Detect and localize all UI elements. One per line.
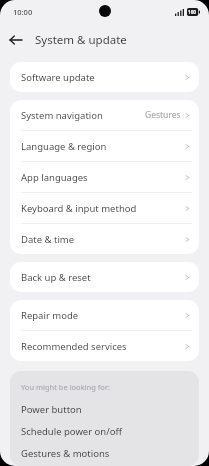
button[interactable]: System navigation (10, 100, 199, 130)
staticText: Software update (21, 71, 95, 84)
staticText: Language & region (21, 140, 107, 153)
staticText: Keyboard & input method (21, 202, 137, 215)
staticText: Power button (21, 403, 82, 416)
staticText: You might be looking for: (21, 382, 111, 392)
staticText: Gestures & motions (21, 447, 110, 460)
button[interactable]: Power button (10, 398, 199, 420)
button[interactable]: Keyboard & input method (10, 193, 199, 223)
staticText: Repair mode (21, 309, 79, 322)
button[interactable]: Language & region (10, 131, 199, 161)
button[interactable]: Recommended services (10, 331, 199, 361)
staticText: System navigation (21, 109, 103, 122)
button[interactable]: Schedule power on/off (10, 420, 199, 442)
button[interactable]: Gestures & motions (10, 442, 199, 464)
button[interactable]: Back (0, 24, 31, 55)
staticText: 100 (188, 9, 197, 15)
staticText: Date & time (21, 233, 75, 246)
staticText: System & update (35, 32, 127, 48)
staticText: 10:00 (13, 7, 33, 17)
staticText: Schedule power on/off (21, 425, 123, 438)
staticText: Gestures (145, 109, 181, 121)
button[interactable]: Accessibility (10, 464, 199, 466)
button[interactable]: Software update (10, 62, 199, 92)
staticText: Back up & reset (21, 271, 91, 284)
staticText: App languages (21, 171, 88, 184)
staticText: Recommended services (21, 340, 127, 353)
button[interactable]: Back up & reset (10, 262, 199, 292)
button[interactable]: Date & time (10, 224, 199, 254)
button[interactable]: Repair mode (10, 300, 199, 330)
button[interactable]: App languages (10, 162, 199, 192)
